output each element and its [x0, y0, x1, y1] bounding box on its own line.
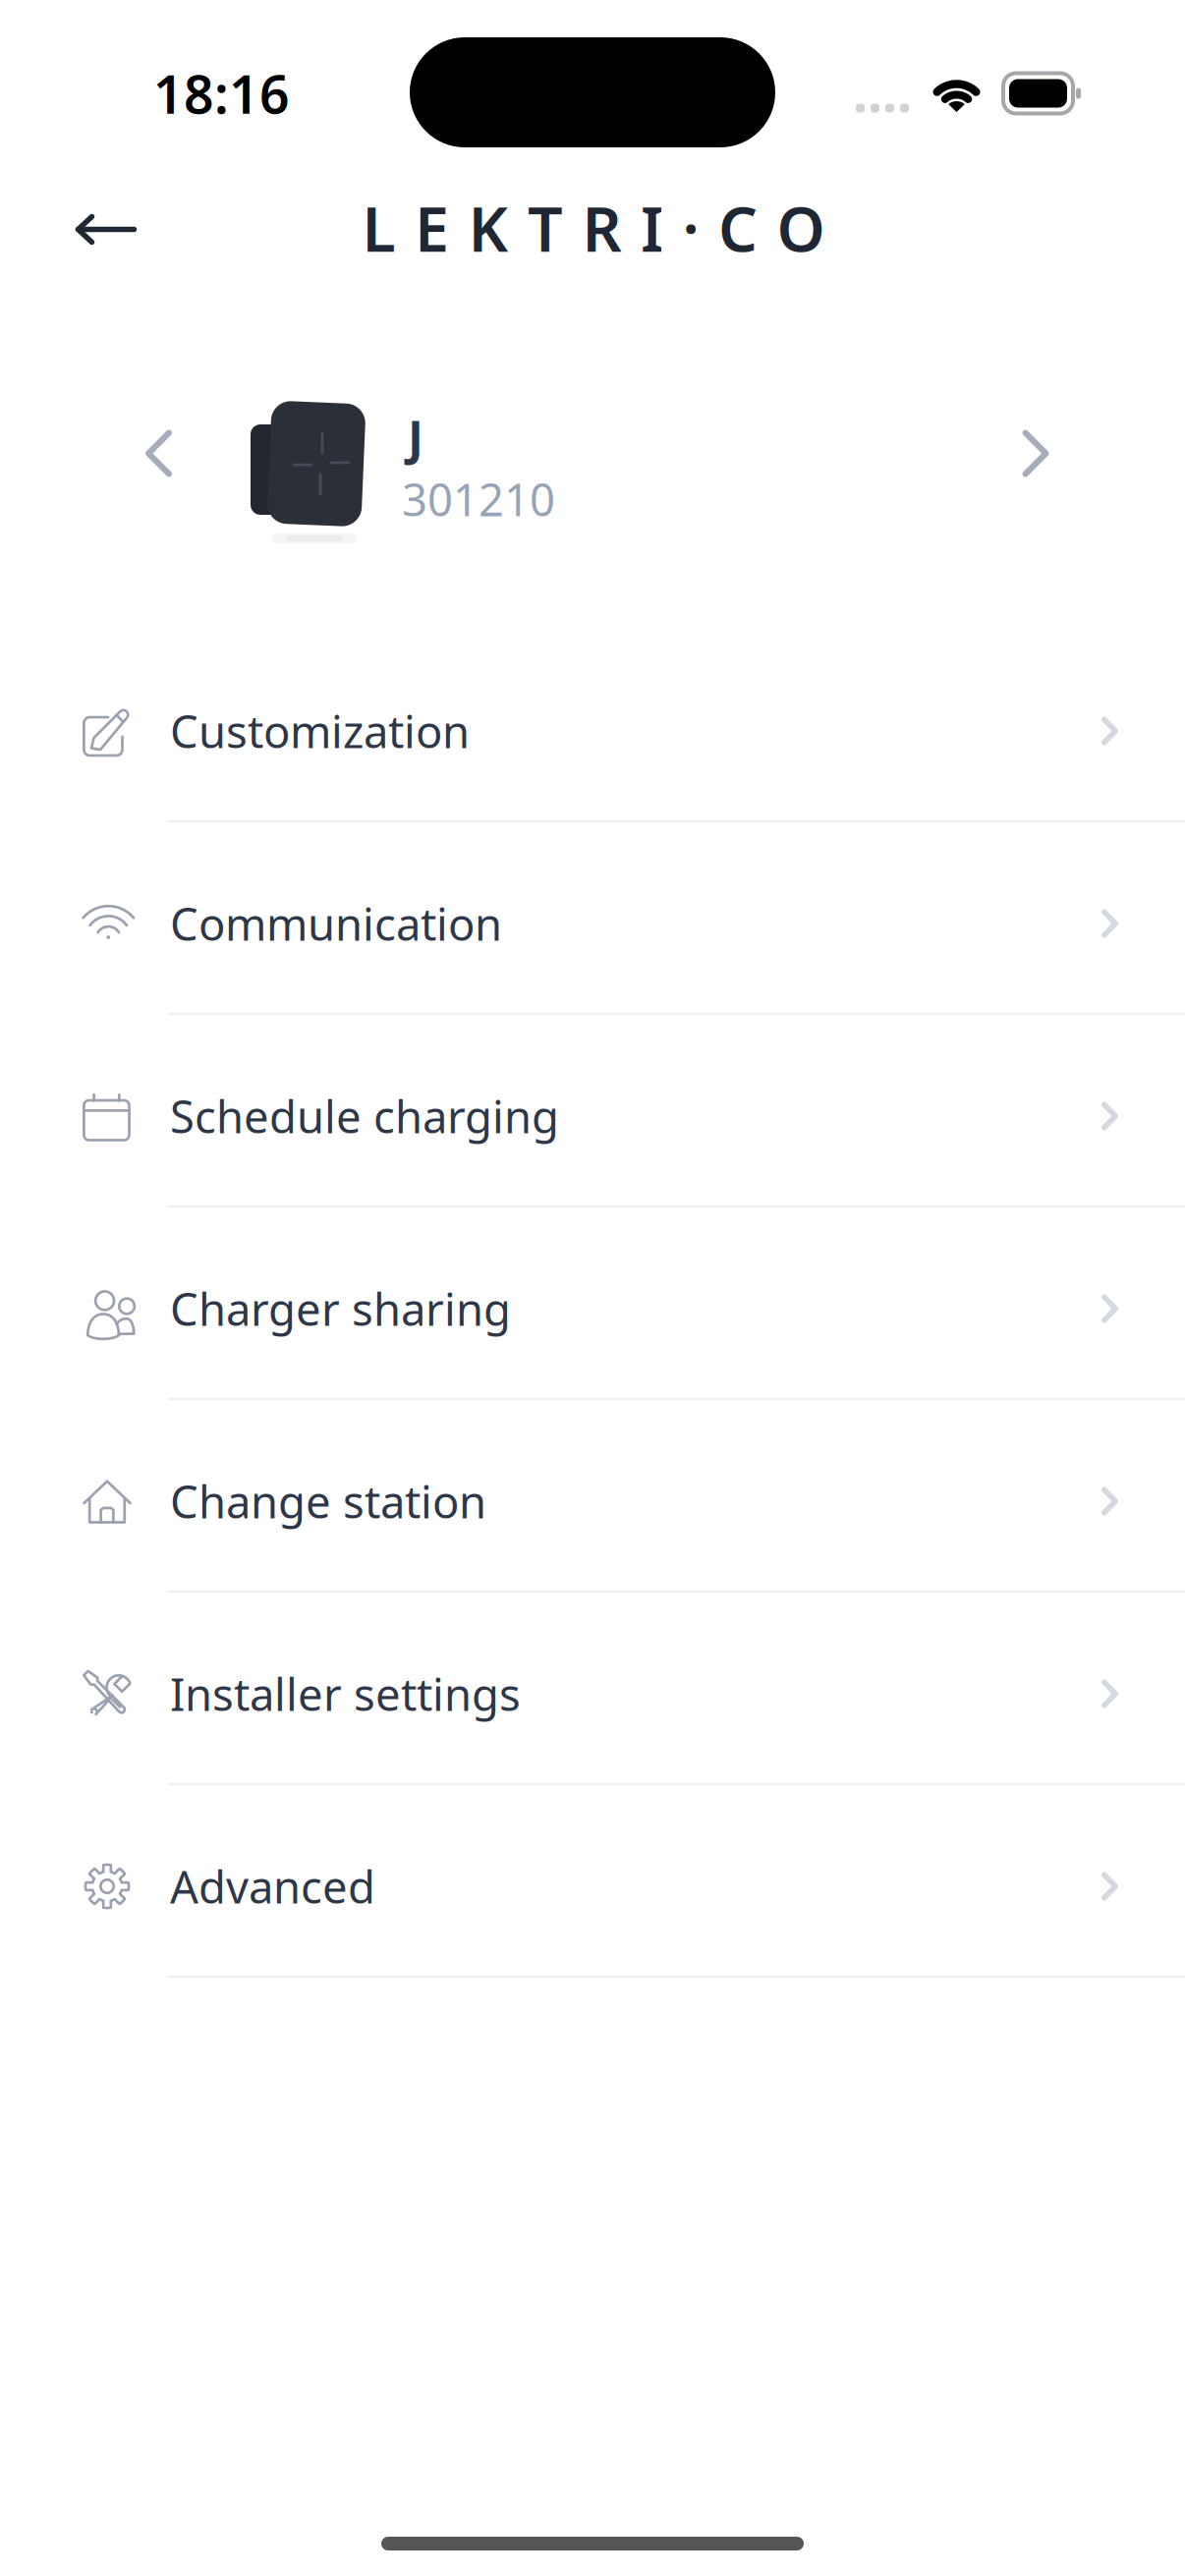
staticText: 18:16: [153, 59, 290, 128]
staticText: Schedule charging: [170, 1086, 559, 1146]
staticText: I: [641, 187, 663, 269]
button[interactable]: Schedule charging: [0, 1015, 1185, 1205]
button[interactable]: Back: [59, 193, 153, 266]
button[interactable]: Previous charger: [117, 412, 200, 495]
staticText: T: [528, 187, 563, 269]
staticText: 301210: [402, 470, 555, 529]
button[interactable]: Advanced: [0, 1785, 1185, 1976]
staticText: K: [468, 187, 508, 269]
staticText: ·: [682, 187, 699, 269]
staticText: Communication: [170, 894, 502, 953]
button[interactable]: Communication: [0, 822, 1185, 1013]
staticText: E: [415, 187, 449, 269]
button[interactable]: Next charger: [994, 412, 1077, 495]
staticText: R: [582, 187, 621, 269]
staticText: O: [777, 187, 825, 269]
staticText: Customization: [170, 701, 470, 761]
staticText: Charger sharing: [170, 1279, 511, 1338]
button[interactable]: Installer settings: [0, 1593, 1185, 1783]
staticText: J: [408, 406, 423, 468]
button[interactable]: Customization: [0, 630, 1185, 820]
staticText: Installer settings: [170, 1664, 521, 1723]
button[interactable]: Charger sharing: [0, 1207, 1185, 1398]
staticText: Advanced: [170, 1857, 375, 1916]
staticText: L: [362, 187, 395, 269]
staticText: C: [718, 187, 758, 269]
staticText: Change station: [170, 1472, 486, 1531]
button[interactable]: Change station: [0, 1400, 1185, 1591]
